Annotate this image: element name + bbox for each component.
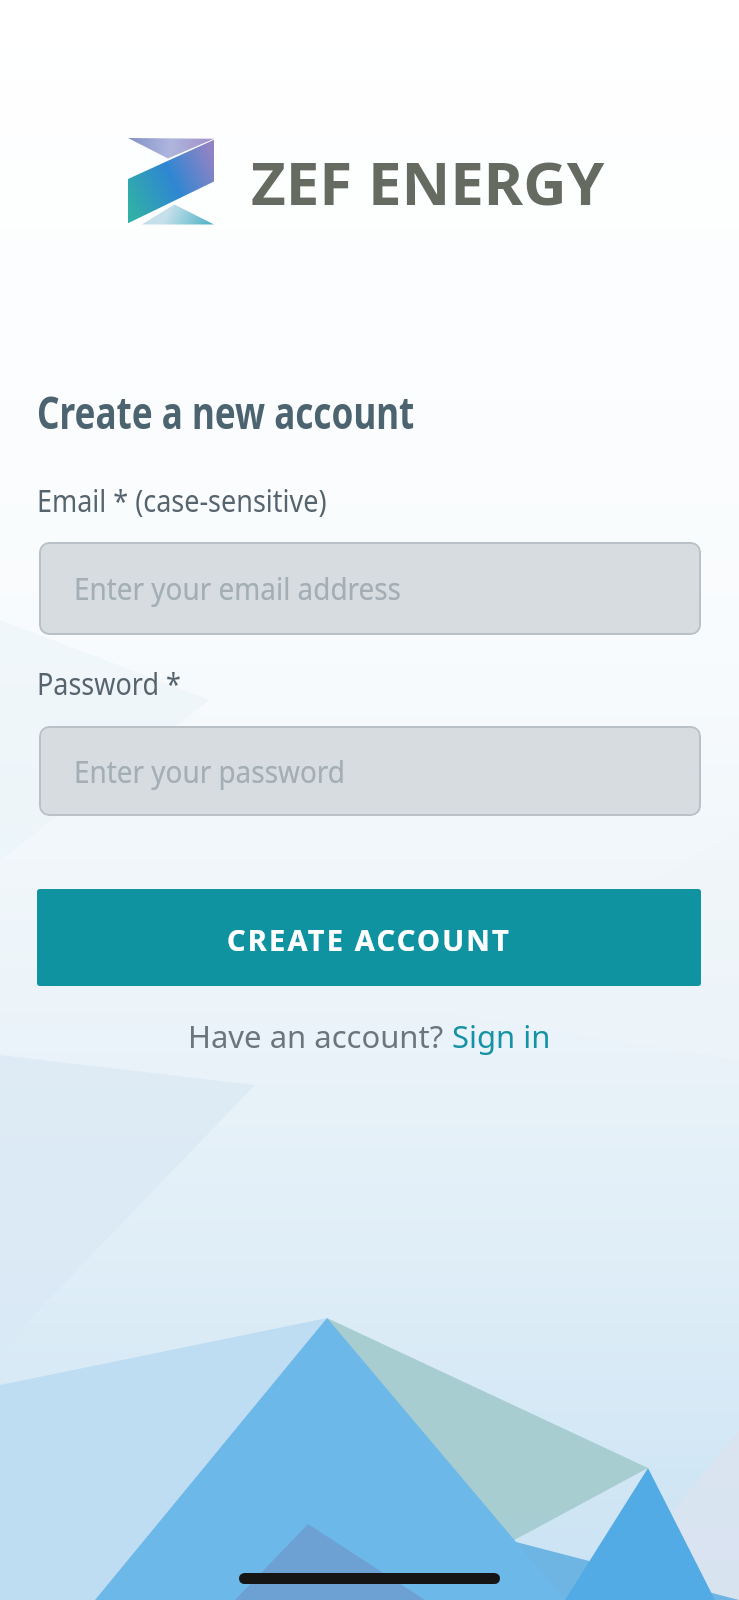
button[interactable]: Have an account?: [188, 1015, 551, 1057]
staticText: Email * (case-sensitive): [37, 479, 327, 521]
staticText: Have an account?: [188, 1015, 452, 1057]
staticText: Enter your email address: [74, 568, 401, 609]
button[interactable]: Enter your password: [39, 726, 701, 816]
staticText: ZEF ENERGY: [251, 141, 605, 223]
staticText: Enter your password: [74, 751, 346, 792]
staticText: Sign in: [452, 1015, 551, 1057]
button[interactable]: CREATE ACCOUNT: [37, 889, 701, 986]
staticText: CREATE ACCOUNT: [227, 920, 511, 959]
button[interactable]: Enter your email address: [39, 542, 701, 635]
staticText: Password *: [37, 662, 181, 704]
staticText: Create a new account: [37, 381, 414, 442]
